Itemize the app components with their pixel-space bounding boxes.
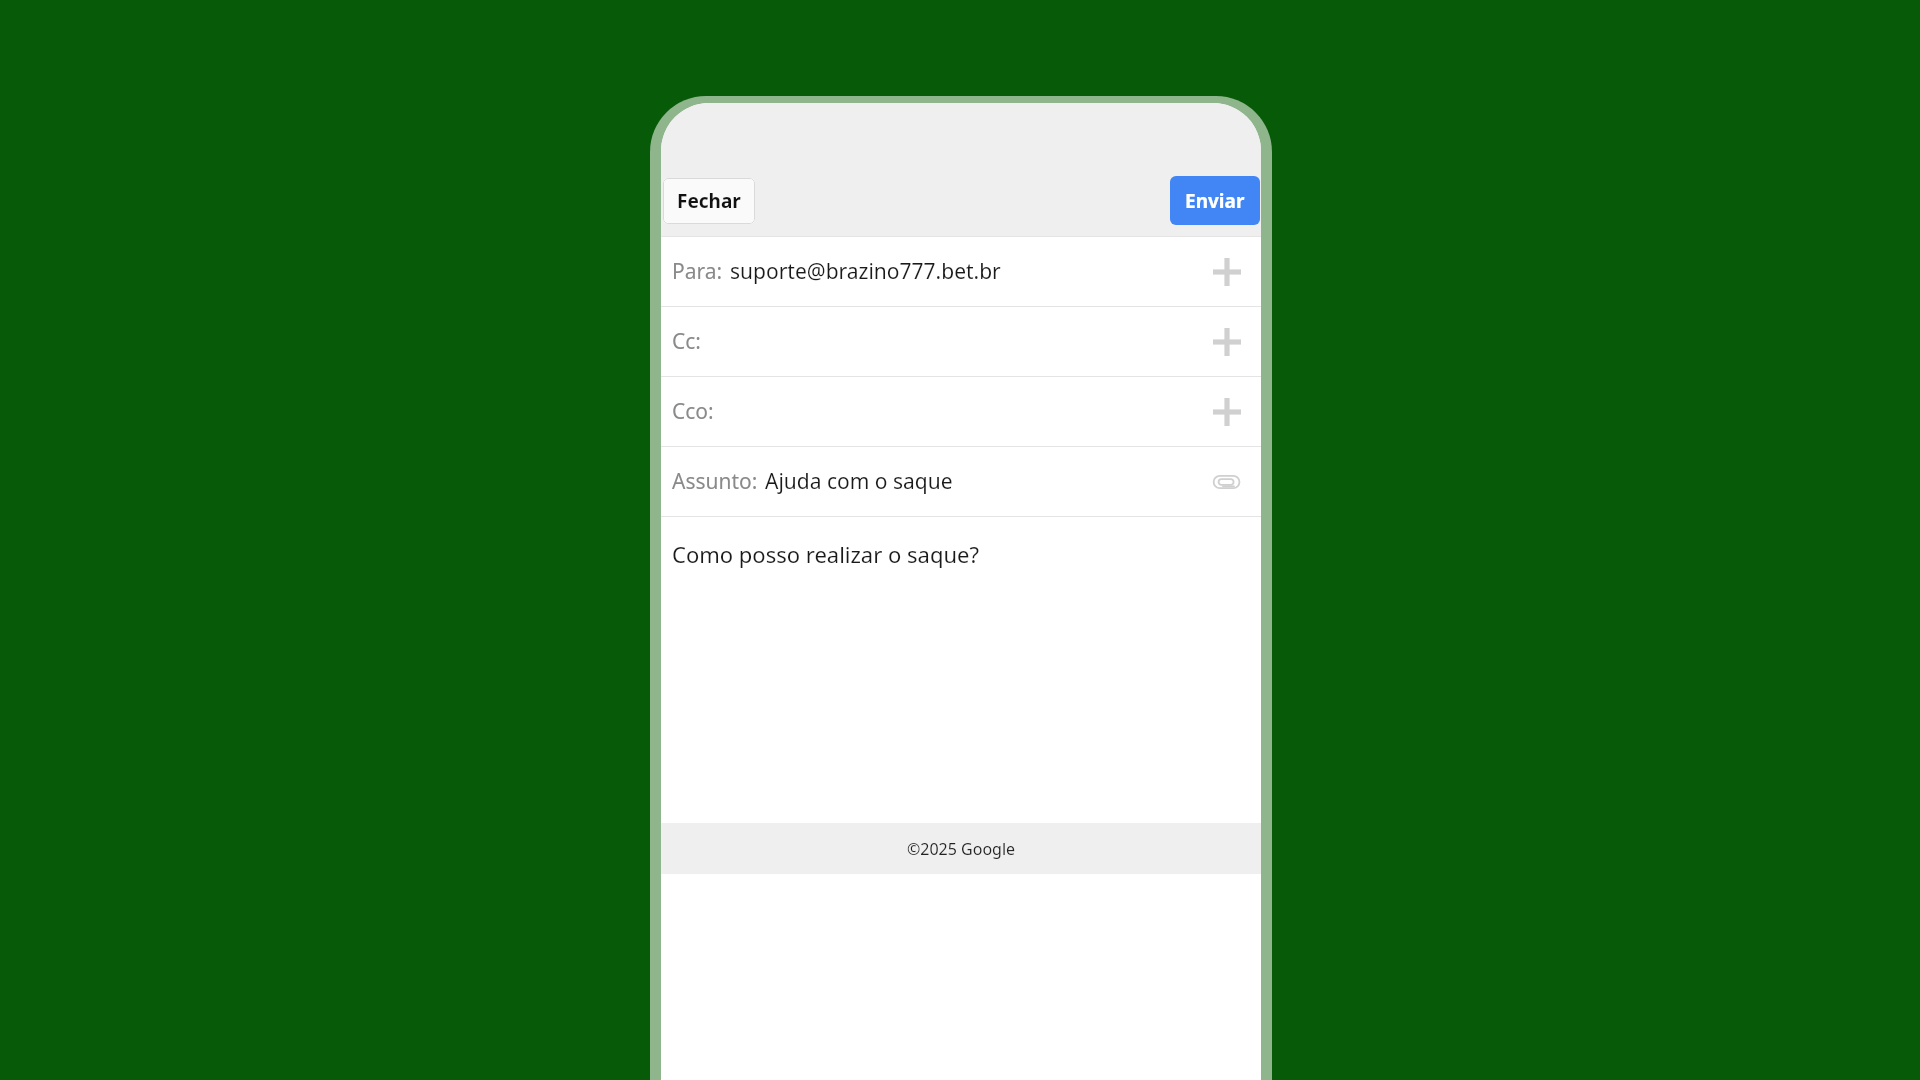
button[interactable]: Add recipient bbox=[1207, 252, 1247, 292]
staticText: Cc: bbox=[672, 327, 701, 356]
button[interactable]: Para: bbox=[661, 237, 1261, 306]
button[interactable]: Add recipient bbox=[1207, 322, 1247, 362]
staticText: ©2025 Google bbox=[907, 838, 1016, 860]
staticText: Como posso realizar o saque? bbox=[672, 539, 979, 569]
button[interactable]: Attach file bbox=[1207, 462, 1247, 502]
staticText: Enviar bbox=[1185, 188, 1245, 214]
staticText: Assunto: bbox=[672, 467, 758, 496]
staticText: Cco: bbox=[672, 397, 714, 426]
button[interactable]: Fechar bbox=[663, 178, 755, 224]
button[interactable]: Como posso realizar o saque? bbox=[661, 517, 1261, 823]
button[interactable]: Enviar bbox=[1170, 176, 1260, 225]
button[interactable]: Add recipient bbox=[1207, 392, 1247, 432]
staticText: suporte@brazino777.bet.br bbox=[730, 257, 1001, 286]
staticText: Ajuda com o saque bbox=[765, 467, 953, 496]
button[interactable]: Assunto: bbox=[661, 447, 1261, 516]
button[interactable]: Cco: bbox=[661, 377, 1261, 446]
staticText: Fechar bbox=[677, 188, 741, 214]
button[interactable]: Cc: bbox=[661, 307, 1261, 376]
staticText: Para: bbox=[672, 257, 723, 286]
